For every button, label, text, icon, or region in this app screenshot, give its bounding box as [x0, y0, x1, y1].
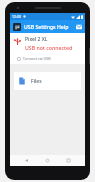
- button[interactable]: Mail: [75, 23, 82, 30]
- button[interactable]: Back: [22, 156, 31, 165]
- staticText: Pixel 2 XL: [25, 36, 48, 43]
- staticText: USB Settings Help: [24, 23, 69, 30]
- button[interactable]: Recents: [64, 156, 73, 165]
- staticText: 12:00: [12, 14, 21, 19]
- staticText: Connect via USB: [23, 56, 51, 61]
- button[interactable]: Pixel 2 XL: [10, 33, 85, 64]
- button[interactable]: Connect via USB: [13, 56, 82, 61]
- button[interactable]: App icon: [13, 23, 21, 31]
- staticText: USB not connected: [25, 44, 73, 51]
- staticText: Files: [31, 78, 42, 85]
- button[interactable]: Home: [43, 156, 52, 165]
- button[interactable]: Files: [14, 72, 81, 90]
